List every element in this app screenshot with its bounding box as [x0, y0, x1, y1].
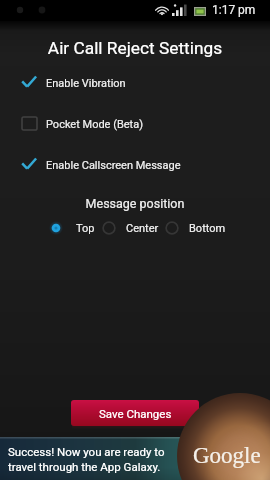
- staticText: Message position: [0, 196, 270, 211]
- button[interactable]: Top: [47, 216, 95, 240]
- staticText: travel through the App Galaxy.: [8, 460, 161, 473]
- button[interactable]: Enable Vibration: [0, 67, 270, 97]
- staticText: Enable Vibration: [46, 77, 126, 90]
- staticText: Google: [193, 443, 261, 468]
- staticText: Bottom: [189, 222, 226, 235]
- staticText: Enable Callscreen Message: [46, 159, 181, 172]
- button[interactable]: Success! Now you are ready to: [0, 437, 270, 480]
- button[interactable]: Save Changes: [71, 400, 199, 426]
- button[interactable]: Bottom: [163, 216, 226, 240]
- button[interactable]: Enable Callscreen Message: [0, 149, 270, 179]
- staticText: Air Call Reject Settings: [0, 38, 270, 58]
- staticText: Center: [126, 222, 159, 235]
- button[interactable]: Center: [100, 216, 159, 240]
- button[interactable]: Pocket Mode (Beta): [0, 108, 270, 138]
- staticText: Success! Now you are ready to: [8, 445, 165, 458]
- staticText: Pocket Mode (Beta): [46, 118, 144, 131]
- staticText: Top: [76, 222, 95, 235]
- staticText: 1:17 pm: [212, 3, 256, 17]
- staticText: Save Changes: [99, 407, 172, 420]
